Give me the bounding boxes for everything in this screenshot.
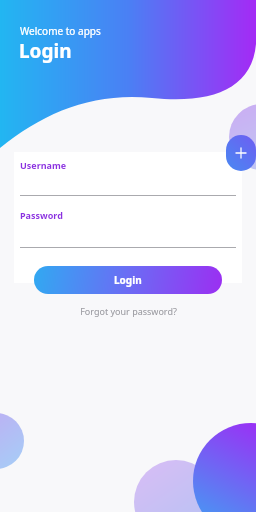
staticText: Login	[114, 273, 142, 287]
staticText: Forgot your password?	[80, 305, 177, 317]
staticText: Password	[20, 209, 63, 221]
staticText: Username	[20, 159, 67, 171]
staticText: Login	[19, 38, 72, 64]
button[interactable]: Forgot your password?	[72, 303, 185, 319]
button[interactable]: Add	[226, 135, 256, 171]
staticText: Welcome to apps	[20, 24, 101, 38]
button[interactable]: Login	[34, 266, 222, 294]
